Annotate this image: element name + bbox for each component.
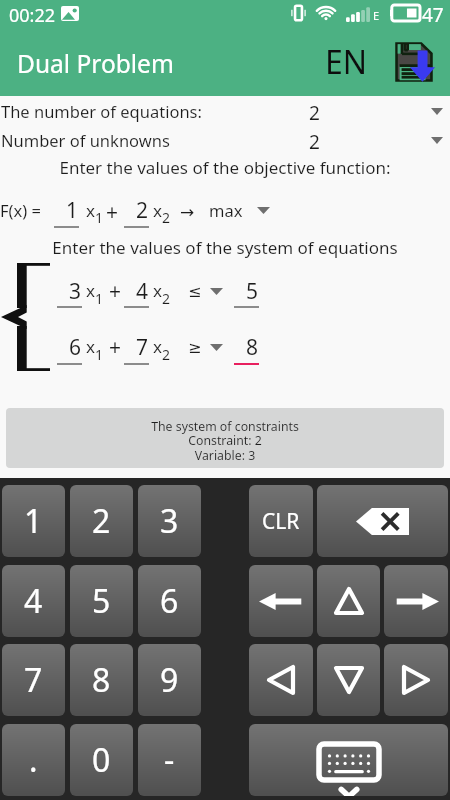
staticText: 47 (422, 2, 444, 28)
staticText: x (86, 279, 95, 302)
staticText: 1 (95, 345, 104, 364)
staticText: 4 (24, 579, 43, 623)
button[interactable]: 3 (138, 485, 201, 557)
button[interactable]: 6 (138, 565, 201, 637)
staticText: - (164, 738, 175, 782)
button[interactable]: 1 (54, 196, 79, 228)
button[interactable]: max (204, 194, 275, 226)
button[interactable]: 4 (124, 277, 149, 308)
button[interactable]: Backspace (317, 485, 448, 557)
staticText: 2 (309, 129, 320, 154)
staticText: 5 (92, 579, 111, 623)
staticText: 6 (160, 579, 179, 623)
button[interactable]: Previous field (249, 644, 313, 716)
staticText: 2 (162, 208, 171, 227)
staticText: The system of constraints Constraint: 2 … (151, 418, 299, 464)
button[interactable]: 1 (2, 485, 65, 557)
button[interactable]: Hide keyboard (249, 724, 448, 796)
staticText: 0 (92, 738, 111, 782)
staticText: CLR (262, 507, 300, 536)
staticText: Enter the values of the objective functi… (0, 156, 450, 179)
staticText: The number of equations: (1, 100, 202, 122)
staticText: . (29, 738, 38, 782)
button[interactable]: EN (316, 35, 377, 89)
staticText: E (373, 8, 380, 23)
button[interactable]: CLR (249, 485, 313, 557)
staticText: Number of unknowns (1, 129, 170, 151)
staticText: 3 (160, 499, 179, 543)
staticText: 6 (69, 333, 82, 362)
staticText: → (180, 202, 195, 222)
button[interactable]: 7 (124, 333, 149, 365)
button[interactable]: Next field (384, 644, 448, 716)
staticText: + (106, 198, 119, 227)
staticText: x (86, 199, 95, 222)
button[interactable]: ≥ (184, 333, 229, 362)
staticText: F(x) = (0, 199, 41, 221)
button[interactable]: Save (386, 33, 442, 91)
staticText: ≥ (188, 338, 202, 357)
staticText: 8 (92, 658, 111, 702)
staticText: + (109, 277, 122, 306)
staticText: 2 (92, 499, 111, 543)
button[interactable]: . (2, 724, 65, 796)
button[interactable]: 0 (70, 724, 133, 796)
staticText: x (86, 335, 95, 358)
staticText: Dual Problem (17, 47, 174, 80)
staticText: 2 (309, 100, 320, 125)
button[interactable]: ≤ (184, 277, 229, 306)
staticText: Enter the values of the system of equati… (0, 236, 450, 259)
staticText: EN (325, 40, 368, 84)
staticText: 5 (246, 277, 259, 306)
staticText: x (153, 335, 162, 358)
staticText: ≤ (188, 282, 202, 301)
button[interactable]: Number of unknowns (0, 125, 450, 154)
staticText: x (153, 199, 162, 222)
button[interactable]: 4 (2, 565, 65, 637)
button[interactable]: Move left (249, 565, 313, 637)
staticText: 3 (69, 277, 82, 306)
button[interactable]: Move right (384, 565, 448, 637)
staticText: 2 (162, 345, 171, 364)
staticText: 7 (24, 658, 43, 702)
button[interactable]: 5 (234, 277, 259, 308)
staticText: 7 (136, 333, 149, 362)
staticText: 2 (162, 289, 171, 308)
button[interactable]: 6 (57, 333, 82, 365)
button[interactable]: 2 (70, 485, 133, 557)
staticText: + (109, 333, 122, 362)
staticText: max (209, 199, 243, 221)
staticText: 1 (66, 196, 79, 225)
button[interactable]: 9 (138, 644, 201, 716)
button[interactable]: The system of constraints Constraint: 2 … (6, 408, 444, 468)
button[interactable]: 8 (70, 644, 133, 716)
button[interactable]: 5 (70, 565, 133, 637)
staticText: 2 (136, 196, 149, 225)
staticText: 1 (95, 289, 104, 308)
staticText: 1 (95, 208, 104, 227)
staticText: 8 (246, 333, 259, 362)
staticText: 00:22 (9, 3, 56, 28)
button[interactable]: Move down (317, 644, 380, 716)
button[interactable]: The number of equations: (0, 96, 450, 125)
staticText: x (153, 279, 162, 302)
button[interactable]: - (138, 724, 201, 796)
staticText: 4 (136, 277, 149, 306)
button[interactable]: 3 (57, 277, 82, 308)
staticText: 9 (160, 658, 179, 702)
button[interactable]: 2 (124, 196, 149, 228)
button[interactable]: 8 (234, 333, 259, 365)
staticText: 1 (24, 499, 43, 543)
button[interactable]: 7 (2, 644, 65, 716)
button[interactable]: Move up (317, 565, 380, 637)
